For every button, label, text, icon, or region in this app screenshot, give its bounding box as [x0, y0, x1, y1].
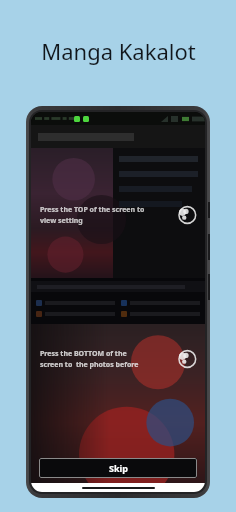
button[interactable] — [121, 298, 200, 307]
staticText: Press the TOP of the screen to view sett… — [40, 205, 175, 225]
other: Tap here — [175, 348, 197, 370]
button[interactable] — [121, 309, 200, 318]
button[interactable] — [36, 298, 115, 307]
staticText: Press the BOTTOM of the screen to the ph… — [40, 349, 175, 369]
other: Tap here — [175, 204, 197, 226]
staticText: Skip — [109, 462, 128, 474]
button[interactable]: Skip — [39, 458, 197, 478]
button[interactable] — [36, 309, 115, 318]
staticText: Manga Kakalot — [41, 36, 196, 66]
